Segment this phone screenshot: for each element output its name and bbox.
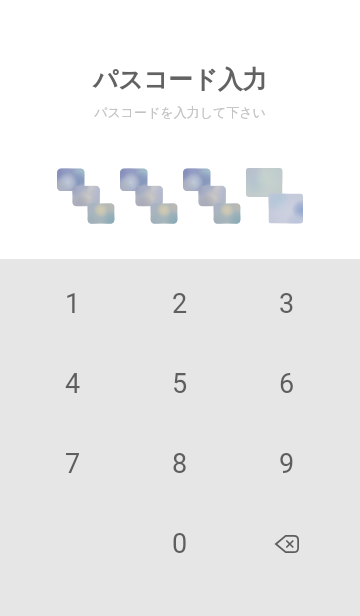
button[interactable]: 1: [20, 264, 126, 344]
other: Delete: [275, 535, 299, 553]
button[interactable]: 0: [126, 504, 233, 584]
button[interactable]: 6: [233, 344, 340, 424]
button[interactable]: 4: [20, 344, 126, 424]
button[interactable]: 8: [126, 424, 233, 504]
staticText: 3: [279, 288, 295, 320]
button[interactable]: 7: [20, 424, 126, 504]
staticText: 8: [172, 448, 188, 480]
staticText: 0: [172, 528, 188, 560]
button[interactable]: 5: [126, 344, 233, 424]
button[interactable]: Delete: [233, 504, 340, 584]
staticText: 4: [65, 368, 81, 400]
staticText: 9: [279, 448, 295, 480]
staticText: 7: [65, 448, 81, 480]
staticText: 1: [65, 288, 81, 320]
staticText: パスコード入力: [93, 64, 267, 95]
staticText: 5: [172, 368, 188, 400]
button[interactable]: 3: [233, 264, 340, 344]
button[interactable]: 2: [126, 264, 233, 344]
staticText: 6: [279, 368, 295, 400]
staticText: パスコードを入力して下さい: [94, 104, 266, 120]
staticText: 2: [172, 288, 188, 320]
button[interactable]: 9: [233, 424, 340, 504]
